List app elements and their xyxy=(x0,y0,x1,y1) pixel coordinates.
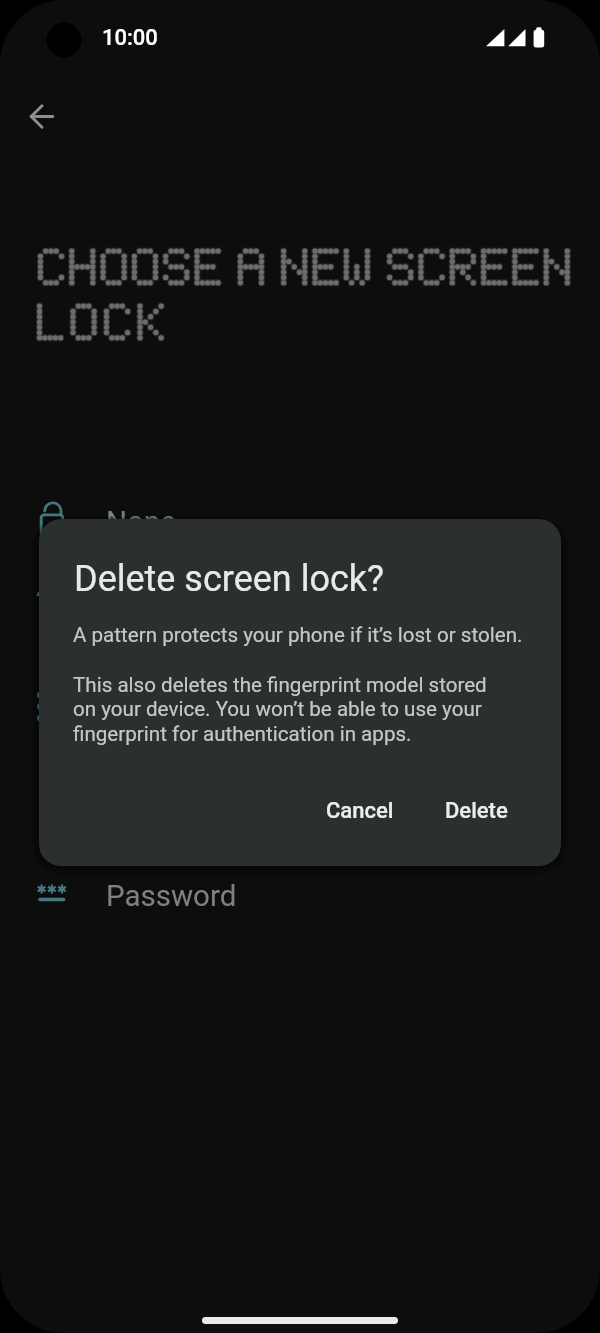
staticText: 10:00 xyxy=(102,25,158,51)
staticText: Swipe xyxy=(106,598,186,633)
button[interactable]: Delete xyxy=(427,785,525,837)
staticText: Pattern xyxy=(106,692,202,727)
staticText: Delete xyxy=(445,798,508,824)
button[interactable]: None xyxy=(0,476,600,569)
button[interactable]: Password xyxy=(0,850,600,943)
button[interactable]: Pattern xyxy=(0,663,600,756)
staticText: This also deletes the fingerprint model … xyxy=(73,673,487,746)
staticText: Cancel xyxy=(326,798,394,824)
button[interactable] xyxy=(18,92,66,140)
staticText: Delete screen lock? xyxy=(74,558,385,600)
button[interactable]: Cancel xyxy=(307,785,412,837)
button[interactable]: Swipe xyxy=(0,569,600,662)
staticText: A pattern protects your phone if it’s lo… xyxy=(73,623,523,647)
button[interactable]: PIN xyxy=(0,756,600,849)
staticText: None xyxy=(106,505,176,540)
staticText: Password xyxy=(106,879,237,914)
